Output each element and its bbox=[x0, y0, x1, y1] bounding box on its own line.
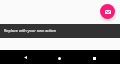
button[interactable]: Recent apps bbox=[85, 50, 103, 64]
button[interactable]: Back bbox=[15, 50, 33, 64]
button[interactable]: Send email bbox=[100, 4, 115, 19]
button[interactable]: Replace with your own action bbox=[0, 24, 120, 38]
button[interactable]: Home bbox=[50, 50, 68, 64]
staticText: Replace with your own action bbox=[4, 28, 57, 33]
